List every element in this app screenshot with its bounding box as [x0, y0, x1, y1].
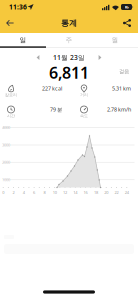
staticText: 걸음	[119, 68, 129, 75]
button[interactable]: Previous day	[34, 52, 42, 62]
staticText: 6,811	[49, 62, 89, 83]
staticText: 11월 23일	[53, 53, 85, 62]
staticText: 8	[43, 190, 45, 195]
staticText: 통계	[61, 18, 77, 28]
staticText: 시간	[7, 113, 15, 118]
staticText: 5.31 km	[112, 85, 131, 92]
button[interactable]: Next day	[96, 52, 104, 62]
staticText: 거리	[80, 92, 88, 97]
staticText: 4000	[2, 125, 10, 130]
button[interactable]: 월	[92, 33, 138, 47]
staticText: 월	[111, 36, 118, 44]
staticText: 22	[114, 190, 118, 195]
staticText: 0	[2, 190, 4, 195]
staticText: 속도	[80, 113, 88, 118]
staticText: 칼로리	[5, 92, 17, 97]
staticText: 46	[124, 4, 128, 10]
staticText: 4	[23, 190, 25, 195]
button[interactable]: 일	[0, 33, 46, 47]
staticText: 14	[73, 190, 77, 195]
staticText: 20	[104, 190, 108, 195]
staticText: 10	[53, 190, 57, 195]
staticText: 18	[94, 190, 98, 195]
staticText: 2.78 km/h	[107, 106, 131, 113]
staticText: 79 분	[50, 106, 62, 113]
staticText: 227 kcal	[42, 85, 62, 92]
staticText: 1000	[2, 177, 10, 182]
staticText: 2	[12, 190, 14, 195]
staticText: 3000	[2, 142, 10, 148]
staticText: 2000	[2, 160, 10, 165]
staticText: 11:36	[9, 3, 27, 11]
staticText: 6	[33, 190, 35, 195]
staticText: 주	[65, 36, 72, 44]
staticText: 24	[125, 190, 129, 195]
staticText: 일	[19, 36, 26, 44]
button[interactable]: Back	[2, 15, 18, 30]
staticText: 16	[84, 190, 88, 195]
button[interactable]: 주	[46, 33, 92, 47]
staticText: 12	[63, 190, 67, 195]
button[interactable]: Share	[120, 16, 134, 30]
